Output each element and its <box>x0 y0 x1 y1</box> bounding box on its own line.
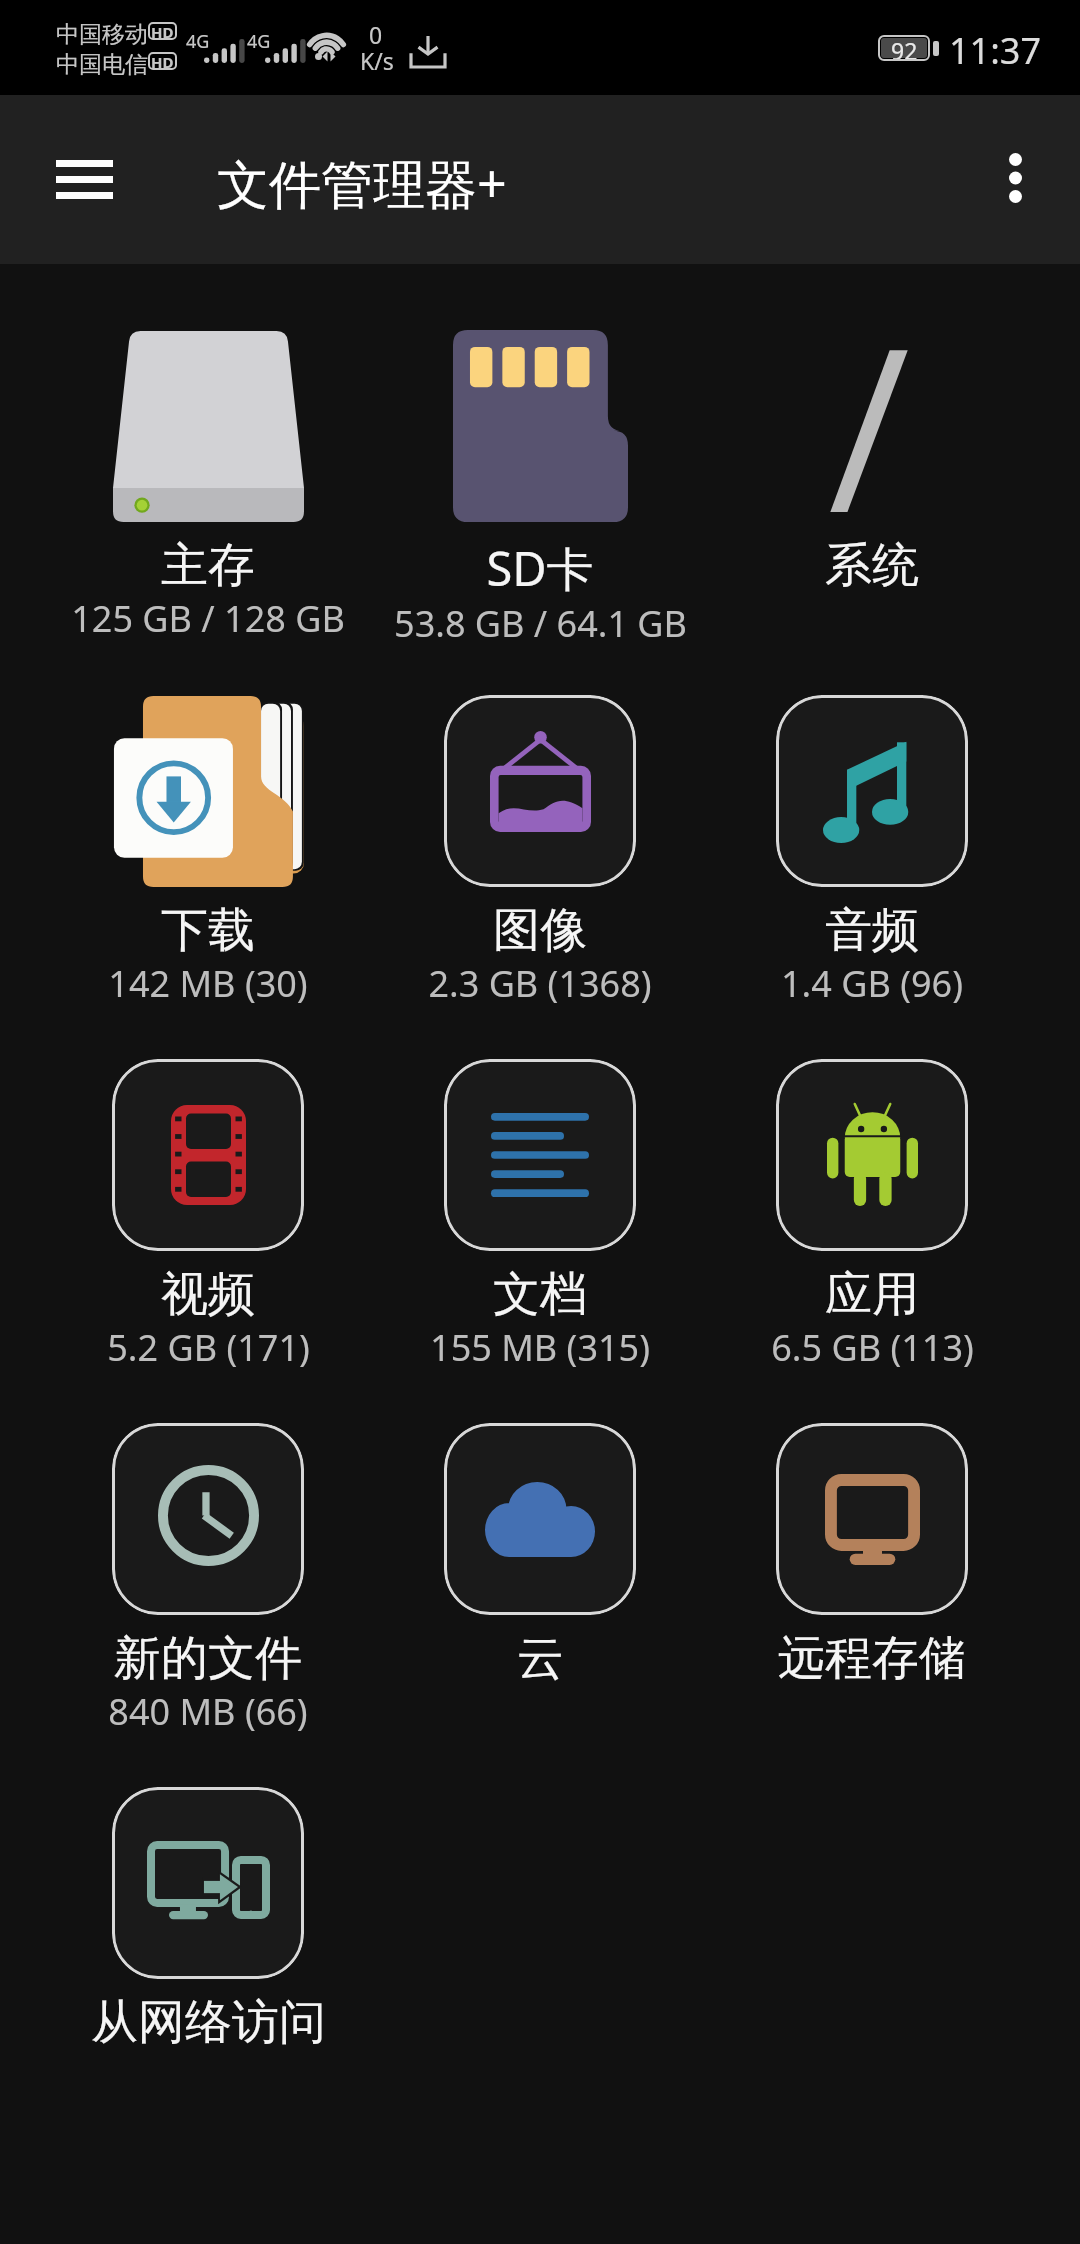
button[interactable]: 从网络访问 <box>42 1787 374 2052</box>
staticText: 5.2 GB (171) <box>107 1323 310 1372</box>
staticText: 中国电信 <box>56 50 148 79</box>
staticText: 视频 <box>161 1265 255 1324</box>
staticText: 840 MB (66) <box>108 1687 308 1736</box>
staticText: 远程存储 <box>778 1629 966 1688</box>
staticText: 11:37 <box>949 26 1042 75</box>
staticText: 2.3 GB (1368) <box>428 959 652 1008</box>
staticText: SD卡 <box>486 536 594 600</box>
staticText: 应用 <box>825 1265 919 1324</box>
button[interactable]: 系统 <box>706 330 1038 595</box>
staticText: 文件管理器+ <box>217 147 507 218</box>
staticText: 125 GB / 128 GB <box>71 594 345 643</box>
staticText: 中国移动 <box>56 20 148 49</box>
button[interactable]: More options <box>965 128 1065 228</box>
staticText: 音频 <box>825 901 919 960</box>
button[interactable]: SD卡 <box>374 330 706 649</box>
staticText: 155 MB (315) <box>430 1323 650 1372</box>
button[interactable]: 主存 <box>42 330 374 644</box>
staticText: 142 MB (30) <box>108 959 308 1008</box>
staticText: K/s <box>360 45 394 76</box>
staticText: 6.5 GB (113) <box>771 1323 974 1372</box>
staticText: 文档 <box>493 1265 587 1324</box>
staticText: HD <box>151 52 174 70</box>
staticText: 从网络访问 <box>91 1993 326 2052</box>
button[interactable]: 下载 <box>42 695 374 1009</box>
button[interactable]: 云 <box>374 1423 706 1688</box>
staticText: 4G <box>186 29 210 54</box>
button[interactable]: 图像 <box>374 695 706 1009</box>
staticText: 0 <box>369 19 383 50</box>
button[interactable]: Open navigation menu <box>27 122 141 236</box>
staticText: 图像 <box>493 901 587 960</box>
button[interactable]: 文档 <box>374 1059 706 1373</box>
staticText: 云 <box>517 1629 564 1688</box>
staticText: 主存 <box>161 536 255 595</box>
staticText: 4G <box>247 29 271 54</box>
staticText: 53.8 GB / 64.1 GB <box>394 599 687 648</box>
staticText: 92 <box>891 35 918 61</box>
button[interactable]: 视频 <box>42 1059 374 1373</box>
button[interactable]: 新的文件 <box>42 1423 374 1737</box>
staticText: HD <box>151 22 174 40</box>
button[interactable]: 音频 <box>706 695 1038 1009</box>
staticText: 1.4 GB (96) <box>781 959 963 1008</box>
button[interactable]: 应用 <box>706 1059 1038 1373</box>
staticText: 新的文件 <box>114 1629 302 1688</box>
button[interactable]: 远程存储 <box>706 1423 1038 1688</box>
staticText: 系统 <box>825 536 919 595</box>
staticText: 下载 <box>161 901 255 960</box>
